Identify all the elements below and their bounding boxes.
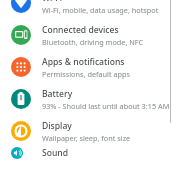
staticText: Battery [42,88,73,100]
button[interactable]: Connected devices [0,19,172,51]
button[interactable]: Apps & notifications [0,51,172,83]
staticText: Display [42,120,72,132]
staticText: Wallpaper, sleep, font size [42,133,131,143]
button[interactable]: Display [0,115,172,147]
staticText: 93% - Should last until about 3:15 AM [42,101,170,111]
staticText: Permissions, default apps [42,69,131,79]
button[interactable]: Battery [0,83,172,115]
staticText: Bluetooth, driving mode, NFC [42,37,144,47]
button[interactable]: Sound [0,147,172,159]
staticText: Sound [42,147,69,159]
staticText: Wi-Fi, mobile, data usage, hotspot [42,5,159,15]
staticText: Connected devices [42,24,119,36]
staticText: Apps & notifications [42,56,125,68]
staticText: Wi-Fi [42,0,63,4]
button[interactable]: Wi-Fi [0,0,172,19]
